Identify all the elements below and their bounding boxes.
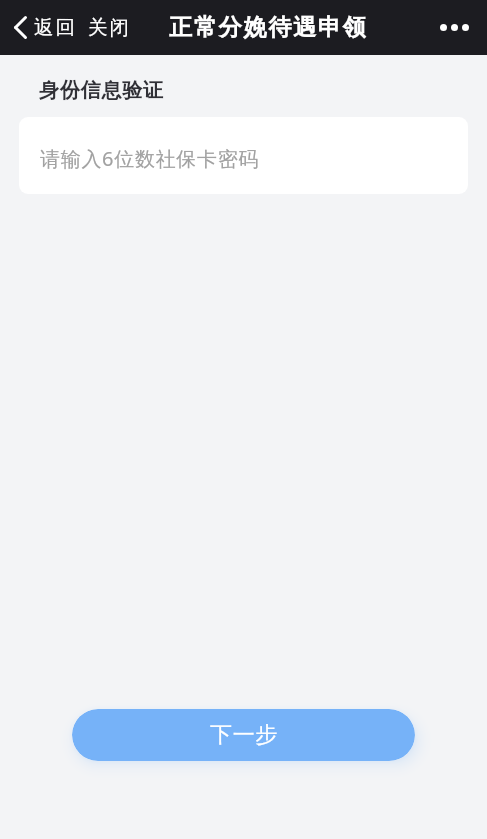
staticText: 关闭 — [87, 15, 130, 40]
button[interactable]: More options — [434, 16, 475, 39]
staticText: 正常分娩待遇申领 — [169, 13, 368, 42]
button[interactable]: Back — [11, 10, 79, 45]
staticText: 返回 — [33, 15, 76, 40]
staticText: 请输入6位数社保卡密码 — [40, 145, 260, 172]
button[interactable]: 关闭 — [84, 10, 133, 45]
button[interactable]: 下一步 — [72, 709, 415, 761]
staticText: 身份信息验证 — [39, 78, 164, 103]
button[interactable]: 请输入6位数社保卡密码 — [19, 117, 468, 194]
staticText: 下一步 — [210, 721, 278, 749]
other: Back — [14, 16, 27, 39]
